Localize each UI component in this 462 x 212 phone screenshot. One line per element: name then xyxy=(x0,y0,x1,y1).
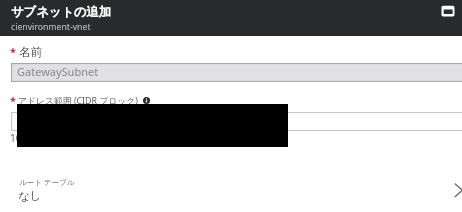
button[interactable]: Restore xyxy=(439,3,457,21)
other: Open route table xyxy=(450,180,462,194)
staticText: GatewaySubnet xyxy=(17,64,99,79)
staticText: * xyxy=(10,93,16,108)
staticText: * xyxy=(10,44,16,59)
staticText: アドレス範囲 (CIDR ブロック) xyxy=(18,95,138,107)
button[interactable]: GatewaySubnet xyxy=(11,63,462,82)
staticText: サブネットの追加 xyxy=(11,4,112,19)
staticText: 10.0.0.0/26 xyxy=(10,131,62,145)
staticText: ルート テーブル xyxy=(19,177,75,187)
staticText: cienvironment-vnet xyxy=(11,21,91,33)
button[interactable] xyxy=(11,112,462,131)
button[interactable]: ルート テーブル xyxy=(0,170,462,210)
other: Info xyxy=(143,97,150,104)
staticText: 名前 xyxy=(19,45,43,60)
staticText: なし xyxy=(18,189,42,203)
